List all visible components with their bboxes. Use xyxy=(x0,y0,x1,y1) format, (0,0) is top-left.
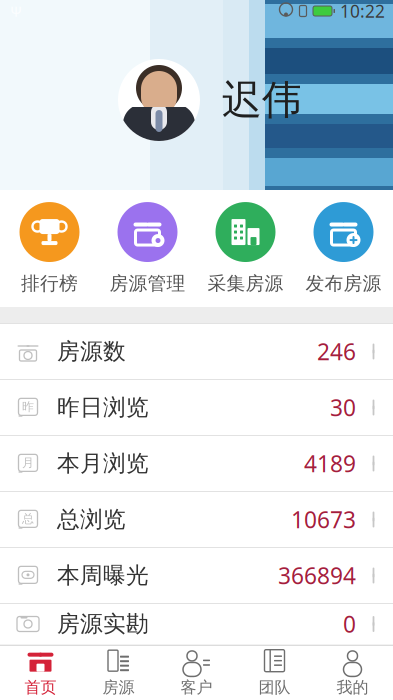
staticText: 房源管理 xyxy=(109,272,185,295)
button[interactable]: 我的 xyxy=(313,645,391,700)
staticText: 昨日浏览 xyxy=(57,394,149,421)
button[interactable]: 房源实勘 xyxy=(0,604,393,644)
staticText: 10:22 xyxy=(340,0,385,22)
staticText: 总 xyxy=(22,511,34,526)
staticText: 本月浏览 xyxy=(57,450,149,477)
button[interactable]: 房源管理 xyxy=(98,202,196,295)
staticText: 客户 xyxy=(180,678,212,697)
staticText: 我的 xyxy=(336,678,368,697)
staticText: 采集房源 xyxy=(207,272,283,295)
staticText: 4189 xyxy=(304,448,356,478)
button[interactable]: 首页 xyxy=(1,645,79,700)
staticText: 总浏览 xyxy=(57,506,126,533)
button[interactable]: 客户 xyxy=(157,645,235,700)
button[interactable]: 排行榜 xyxy=(0,202,98,295)
staticText: 昨 xyxy=(22,399,34,414)
staticText: 房源 xyxy=(102,678,134,697)
button[interactable]: 房源 xyxy=(79,645,157,700)
button[interactable]: 采集房源 xyxy=(196,202,294,295)
staticText: 房源实勘 xyxy=(57,610,149,638)
staticText: 本周曝光 xyxy=(57,562,149,589)
staticText: 30 xyxy=(330,392,356,422)
staticText: 首页 xyxy=(24,678,56,697)
button[interactable]: 团队 xyxy=(235,645,313,700)
staticText: 246 xyxy=(317,336,356,366)
staticText: 366894 xyxy=(278,560,356,590)
staticText: 团队 xyxy=(258,678,290,697)
staticText: 月 xyxy=(22,455,34,470)
button[interactable]: 发布房源 xyxy=(294,202,392,295)
button[interactable]: 房源数 xyxy=(0,324,393,380)
staticText: 发布房源 xyxy=(305,272,381,295)
staticText: 迟伟 xyxy=(222,75,302,124)
button[interactable]: 总 xyxy=(0,492,393,548)
staticText: 排行榜 xyxy=(21,272,78,295)
button[interactable]: 昨 xyxy=(0,380,393,436)
staticText: 房源数 xyxy=(57,338,126,365)
button[interactable]: 月 xyxy=(0,436,393,492)
button[interactable]: 本周曝光 xyxy=(0,548,393,604)
staticText: 0 xyxy=(343,609,356,639)
staticText: 10673 xyxy=(291,504,356,534)
